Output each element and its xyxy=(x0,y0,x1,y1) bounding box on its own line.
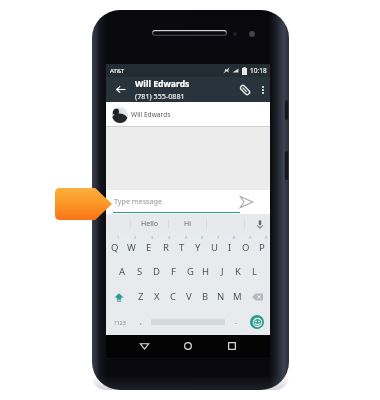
button[interactable]: More options xyxy=(256,77,270,102)
button[interactable]: Z xyxy=(132,284,149,309)
button[interactable]: V xyxy=(181,284,197,309)
staticText: G xyxy=(187,265,194,278)
staticText: C xyxy=(170,290,177,303)
staticText: Will Edwards xyxy=(131,110,171,119)
staticText: L xyxy=(252,265,257,278)
button[interactable]: Shift xyxy=(106,284,132,309)
button[interactable]: Back xyxy=(135,337,153,355)
staticText: W xyxy=(127,241,136,254)
staticText: K xyxy=(235,265,241,278)
staticText: (781) 555-0881 xyxy=(135,91,185,101)
button[interactable]: A xyxy=(114,259,131,284)
staticText: V xyxy=(186,290,192,303)
button[interactable]: Hello xyxy=(130,214,168,234)
staticText: . xyxy=(235,317,237,327)
button[interactable]: 7 xyxy=(206,234,222,259)
button[interactable]: Hi xyxy=(168,214,206,234)
button[interactable]: 8 xyxy=(222,234,238,259)
staticText: 2 xyxy=(134,235,137,240)
staticText: J xyxy=(221,265,224,278)
button[interactable]: Home xyxy=(179,337,197,355)
staticText: 4 xyxy=(168,235,171,240)
button[interactable]: K xyxy=(230,259,246,284)
staticText: A xyxy=(119,265,126,278)
button[interactable]: 1 xyxy=(106,234,123,259)
staticText: D xyxy=(153,265,160,278)
button[interactable]: , xyxy=(133,309,148,335)
button[interactable]: 4 xyxy=(157,234,174,259)
staticText: 3 xyxy=(151,235,154,240)
staticText: P xyxy=(259,241,265,254)
button[interactable]: F xyxy=(165,259,182,284)
staticText: ?123 xyxy=(114,319,126,326)
button[interactable]: Backspace xyxy=(245,284,270,309)
staticText: F xyxy=(171,265,176,278)
button[interactable]: 2 xyxy=(123,234,140,259)
staticText: , xyxy=(140,317,142,327)
button[interactable]: S xyxy=(131,259,148,284)
staticText: O xyxy=(242,241,250,254)
staticText: Z xyxy=(138,290,144,303)
button[interactable]: C xyxy=(165,284,181,309)
button[interactable]: 3 xyxy=(140,234,157,259)
staticText: 6 xyxy=(201,235,204,240)
staticText: 7 xyxy=(217,235,220,240)
staticText: Hi xyxy=(184,219,191,229)
button[interactable]: Voice input xyxy=(247,214,273,234)
button[interactable]: N xyxy=(213,284,229,309)
staticText: T xyxy=(179,241,185,254)
button[interactable]: Send xyxy=(240,190,266,214)
staticText: X xyxy=(154,290,160,303)
staticText: 10:18 xyxy=(250,66,267,75)
button[interactable]: Back xyxy=(106,77,135,102)
staticText: B xyxy=(202,290,209,303)
button[interactable]: 6 xyxy=(190,234,206,259)
staticText: Type message xyxy=(114,196,163,206)
button[interactable]: 9 xyxy=(238,234,254,259)
staticText: R xyxy=(163,241,169,254)
staticText: 0 xyxy=(265,235,268,240)
button[interactable]: B xyxy=(197,284,213,309)
staticText: I xyxy=(228,241,232,254)
staticText: Hello xyxy=(141,219,158,229)
staticText: M xyxy=(233,290,242,303)
button[interactable]: X xyxy=(149,284,165,309)
staticText: Y xyxy=(195,241,201,254)
button[interactable]: Recents xyxy=(223,337,241,355)
button[interactable]: . xyxy=(228,309,243,335)
staticText: 5 xyxy=(185,235,188,240)
button[interactable]: M xyxy=(229,284,245,309)
button[interactable]: 0 xyxy=(254,234,270,259)
staticText: Will Edwards xyxy=(135,78,190,90)
button[interactable]: Emoji xyxy=(243,309,270,335)
staticText: S xyxy=(137,265,143,278)
button[interactable]: J xyxy=(214,259,230,284)
staticText: Q xyxy=(111,241,119,254)
staticText: 8 xyxy=(233,235,236,240)
staticText: E xyxy=(146,241,152,254)
button[interactable]: Space xyxy=(148,309,228,335)
button[interactable]: D xyxy=(148,259,165,284)
button[interactable]: H xyxy=(198,259,214,284)
staticText: 9 xyxy=(249,235,252,240)
staticText: N xyxy=(217,290,225,303)
button[interactable]: G xyxy=(182,259,198,284)
staticText: U xyxy=(211,241,218,254)
button[interactable]: ?123 xyxy=(106,309,133,335)
staticText: 1 xyxy=(117,235,120,240)
staticText: AT&T xyxy=(110,67,125,75)
staticText: H xyxy=(202,265,210,278)
button[interactable]: L xyxy=(246,259,262,284)
button[interactable]: 5 xyxy=(174,234,190,259)
button[interactable]: Attach xyxy=(234,77,256,102)
